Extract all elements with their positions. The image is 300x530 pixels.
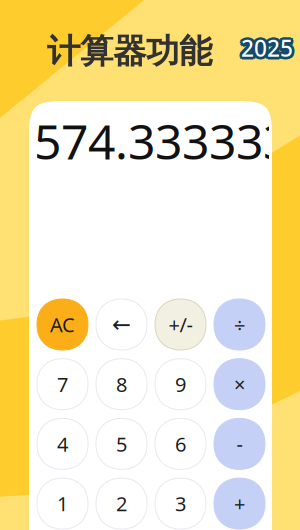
staticText: 5 [116, 431, 127, 457]
button[interactable]: 9 [155, 359, 206, 410]
staticText: × [234, 371, 245, 397]
staticText: 2025 [239, 31, 291, 61]
staticText: 计算器功能 [47, 31, 212, 72]
button[interactable]: 1 [37, 478, 88, 529]
button[interactable]: 6 [155, 418, 206, 469]
button[interactable]: 5 [96, 418, 147, 469]
staticText: +/- [168, 311, 192, 338]
staticText: 2025 [241, 30, 293, 60]
staticText: + [234, 490, 245, 517]
button[interactable]: + [214, 478, 265, 529]
staticText: 2025 [241, 33, 293, 63]
staticText: 6 [175, 431, 186, 457]
button[interactable]: 3 [155, 478, 206, 529]
staticText: 2025 [243, 31, 295, 61]
staticText: 9 [175, 371, 186, 397]
button[interactable]: AC [37, 299, 88, 350]
staticText: 2025 [239, 35, 291, 65]
button[interactable]: 2 [96, 478, 147, 529]
button[interactable]: 8 [96, 359, 147, 410]
staticText: 2025 [241, 36, 293, 66]
button[interactable]: - [214, 418, 265, 469]
staticText: 2025 [243, 35, 295, 65]
staticText: 2025 [238, 33, 290, 63]
staticText: 2025 [244, 33, 296, 63]
button[interactable]: 7 [37, 359, 88, 410]
staticText: 2 [116, 490, 127, 517]
staticText: 4 [57, 431, 68, 457]
staticText: ← [112, 312, 131, 337]
button[interactable]: ← [96, 299, 147, 350]
staticText: 8 [116, 371, 127, 397]
staticText: ÷ [234, 311, 245, 338]
staticText: 1 [57, 490, 68, 517]
staticText: 3 [175, 490, 186, 517]
button[interactable]: ÷ [214, 299, 265, 350]
staticText: - [236, 431, 242, 457]
button[interactable]: × [214, 359, 265, 410]
staticText: 7 [57, 371, 68, 397]
button[interactable]: 4 [37, 418, 88, 469]
staticText: 574.33333333 [34, 109, 300, 173]
button[interactable]: +/- [155, 299, 206, 350]
staticText: AC [50, 311, 75, 338]
